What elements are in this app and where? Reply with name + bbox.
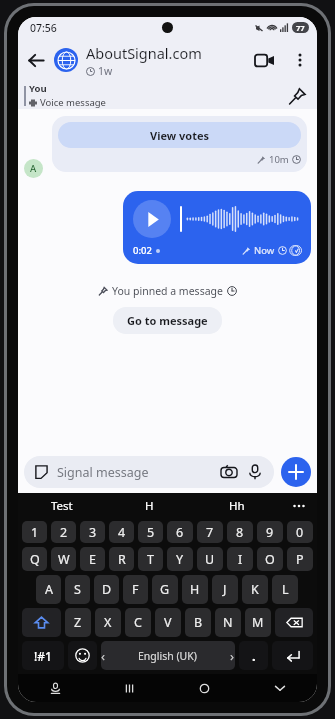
button[interactable]: Y xyxy=(167,547,193,571)
staticText: S xyxy=(74,581,81,598)
button[interactable]: Camera xyxy=(219,462,239,482)
button[interactable]: AboutSignal.com xyxy=(54,38,245,82)
button[interactable]: P xyxy=(287,547,313,571)
staticText: B xyxy=(194,614,203,631)
button[interactable]: 9 xyxy=(257,521,283,543)
button[interactable]: D xyxy=(94,575,119,604)
button[interactable]: View votes xyxy=(52,116,307,172)
button[interactable]: W xyxy=(51,547,76,571)
button[interactable]: H xyxy=(182,575,208,604)
button[interactable]: 7 xyxy=(197,521,223,543)
button[interactable]: Signal message xyxy=(24,456,274,488)
staticText: 3 xyxy=(89,524,97,541)
button[interactable]: Go to message xyxy=(113,307,222,334)
button[interactable]: G xyxy=(152,575,178,604)
button[interactable]: Video call xyxy=(245,41,283,79)
staticText: L xyxy=(282,581,289,598)
staticText: 0 xyxy=(296,524,304,541)
staticText: D xyxy=(102,581,112,598)
button[interactable]: F xyxy=(123,575,148,604)
staticText: 4 xyxy=(118,524,126,541)
button[interactable]: E xyxy=(80,547,105,571)
button[interactable]: N xyxy=(215,608,241,637)
button[interactable]: U xyxy=(197,547,223,571)
staticText: !#1 xyxy=(34,648,52,664)
staticText: 1w xyxy=(98,64,113,78)
button[interactable]: 4 xyxy=(109,521,134,543)
button[interactable]: 0 xyxy=(287,521,313,543)
staticText: English (UK) xyxy=(138,649,197,663)
button[interactable]: 3 xyxy=(80,521,105,543)
staticText: 2 xyxy=(60,524,68,541)
button[interactable]: Play xyxy=(123,191,311,264)
button[interactable]: Z xyxy=(65,608,91,637)
button[interactable]: 2 xyxy=(51,521,76,543)
staticText: Hh xyxy=(229,498,245,514)
staticText: Go to message xyxy=(127,313,208,328)
button[interactable]: M xyxy=(245,608,271,637)
button[interactable]: Shift xyxy=(22,608,61,637)
button[interactable]: View votes xyxy=(58,122,301,148)
staticText: 0:02 xyxy=(133,244,152,257)
button[interactable]: Play xyxy=(133,200,171,238)
staticText: Signal message xyxy=(57,464,149,481)
staticText: G xyxy=(160,581,170,598)
staticText: V xyxy=(164,614,172,631)
button[interactable]: C xyxy=(125,608,151,637)
button[interactable]: Voice message xyxy=(245,462,265,482)
button[interactable]: V xyxy=(155,608,181,637)
staticText: . xyxy=(252,647,256,665)
staticText: R xyxy=(118,551,126,568)
staticText: K xyxy=(251,581,259,598)
staticText: C xyxy=(134,614,142,631)
button[interactable]: R xyxy=(109,547,134,571)
button[interactable]: More options xyxy=(283,43,317,77)
staticText: A xyxy=(45,581,53,598)
staticText: 10m xyxy=(269,153,289,166)
button[interactable]: 5 xyxy=(138,521,163,543)
button[interactable]: Home xyxy=(167,674,242,702)
button[interactable]: K xyxy=(242,575,268,604)
button[interactable]: Hh xyxy=(193,493,281,519)
staticText: 07:56 xyxy=(30,21,57,35)
button[interactable]: 8 xyxy=(227,521,253,543)
staticText: O xyxy=(265,551,275,568)
button[interactable]: Add attachment xyxy=(281,457,311,487)
button[interactable]: A xyxy=(36,575,61,604)
button[interactable]: . xyxy=(239,641,268,670)
button[interactable]: Recent apps xyxy=(92,674,167,702)
button[interactable]: !#1 xyxy=(22,641,64,670)
button[interactable]: Test xyxy=(18,493,105,519)
staticText: Test xyxy=(51,498,73,514)
button[interactable]: J xyxy=(212,575,238,604)
button[interactable]: More suggestions xyxy=(281,493,317,519)
button[interactable]: L xyxy=(272,575,298,604)
button[interactable]: Voice input xyxy=(18,674,92,702)
staticText: AboutSignal.com xyxy=(86,43,202,63)
button[interactable]: Unpin xyxy=(287,86,307,106)
button[interactable]: T xyxy=(138,547,163,571)
button[interactable]: Enter xyxy=(272,641,313,670)
staticText: P xyxy=(296,551,304,568)
button[interactable]: Back xyxy=(18,42,54,78)
button[interactable]: H xyxy=(105,493,193,519)
button[interactable]: X xyxy=(95,608,121,637)
button[interactable]: I xyxy=(227,547,253,571)
button[interactable]: Emoji xyxy=(68,641,97,670)
button[interactable]: O xyxy=(257,547,283,571)
staticText: T xyxy=(147,551,154,568)
button[interactable]: S xyxy=(65,575,90,604)
button[interactable]: Hide keyboard xyxy=(242,674,317,702)
button[interactable]: 1 xyxy=(22,521,47,543)
staticText: I xyxy=(238,551,243,568)
staticText: Y xyxy=(176,551,184,568)
button[interactable]: B xyxy=(185,608,211,637)
button[interactable]: You xyxy=(18,82,317,109)
button[interactable]: Q xyxy=(22,547,47,571)
staticText: A xyxy=(30,162,37,175)
staticText: U xyxy=(205,551,215,568)
button[interactable]: ‹ xyxy=(101,641,235,670)
button[interactable]: 6 xyxy=(167,521,193,543)
button[interactable]: Backspace xyxy=(275,608,313,637)
staticText: 77 xyxy=(296,23,305,33)
